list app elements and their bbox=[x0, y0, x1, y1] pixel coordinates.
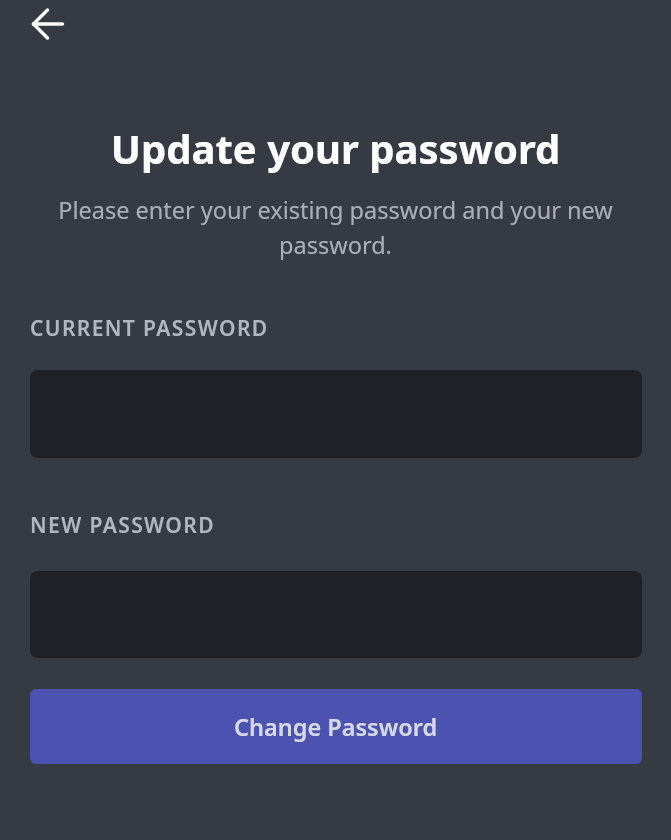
button[interactable]: Change Password bbox=[30, 689, 642, 764]
staticText: Change Password bbox=[234, 711, 438, 743]
staticText: Please enter your existing password and … bbox=[0, 194, 671, 261]
button[interactable] bbox=[26, 2, 70, 46]
staticText: CURRENT PASSWORD bbox=[30, 314, 269, 343]
staticText: NEW PASSWORD bbox=[30, 511, 215, 540]
staticText: Update your password bbox=[0, 121, 671, 175]
